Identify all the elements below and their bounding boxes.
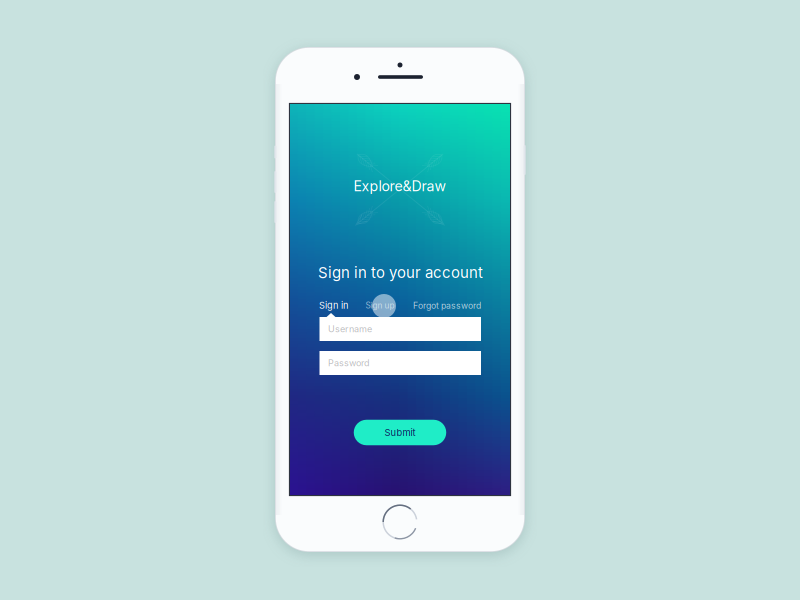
staticText: Username xyxy=(328,323,372,334)
button[interactable]: Submit xyxy=(354,420,446,445)
staticText: Sign in to your account xyxy=(318,263,483,282)
staticText: Sign in xyxy=(319,300,348,311)
staticText: Explore&Draw xyxy=(353,177,446,194)
staticText: Forgot password xyxy=(413,300,481,311)
staticText: Submit xyxy=(384,427,415,438)
button[interactable]: Username xyxy=(319,317,481,341)
button[interactable]: Sign in xyxy=(317,298,349,313)
button[interactable]: Sign up xyxy=(364,298,396,313)
button[interactable]: Forgot password xyxy=(412,298,482,313)
staticText: Password xyxy=(328,357,370,368)
button[interactable]: Password xyxy=(319,351,481,375)
staticText: Sign up xyxy=(365,300,394,310)
